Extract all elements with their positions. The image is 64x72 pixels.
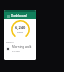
staticText: 6,240 [15, 25, 26, 30]
button[interactable]: Menu [6, 14, 10, 18]
staticText: Morning walk [12, 45, 32, 49]
staticText: steps [17, 30, 24, 33]
button[interactable]: Menu [4, 12, 36, 19]
button[interactable]: Morning walk [4, 44, 36, 53]
staticText: TODAY [6, 40, 14, 43]
staticText: Dashboard [11, 14, 27, 18]
staticText: 2.4 km [12, 49, 20, 52]
